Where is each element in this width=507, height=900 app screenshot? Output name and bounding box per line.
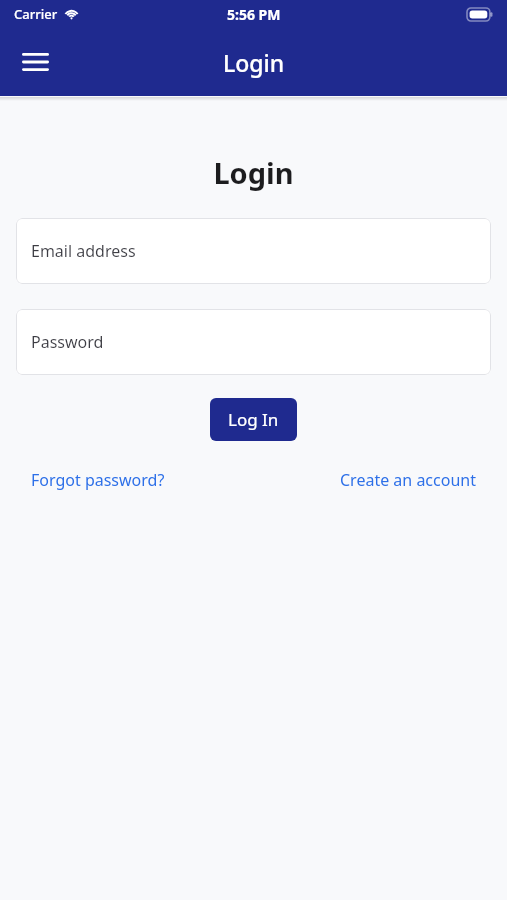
staticText: Forgot password? [31,469,165,491]
staticText: Login [223,47,285,78]
button[interactable]: Log In [210,398,297,441]
button[interactable]: Password [16,309,491,375]
staticText: Email address [31,240,136,262]
button[interactable]: Forgot password? [31,465,165,495]
button[interactable]: Open navigation menu [12,39,58,85]
staticText: 5:56 PM [227,5,281,24]
staticText: Create an account [340,469,476,491]
staticText: Password [31,331,104,353]
staticText: Log In [228,408,279,431]
button[interactable]: Create an account [340,465,476,495]
staticText: Login [16,153,491,192]
button[interactable]: Email address [16,218,491,284]
staticText: Carrier [14,5,58,23]
